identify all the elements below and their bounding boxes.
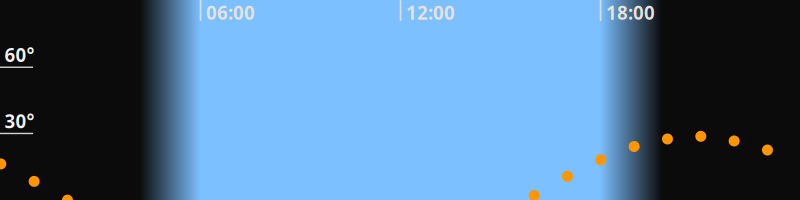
staticText: 18:00 bbox=[606, 0, 655, 25]
staticText: 60° bbox=[4, 42, 34, 67]
staticText: 12:00 bbox=[406, 0, 455, 25]
staticText: 06:00 bbox=[206, 0, 255, 25]
staticText: 30° bbox=[4, 108, 34, 134]
